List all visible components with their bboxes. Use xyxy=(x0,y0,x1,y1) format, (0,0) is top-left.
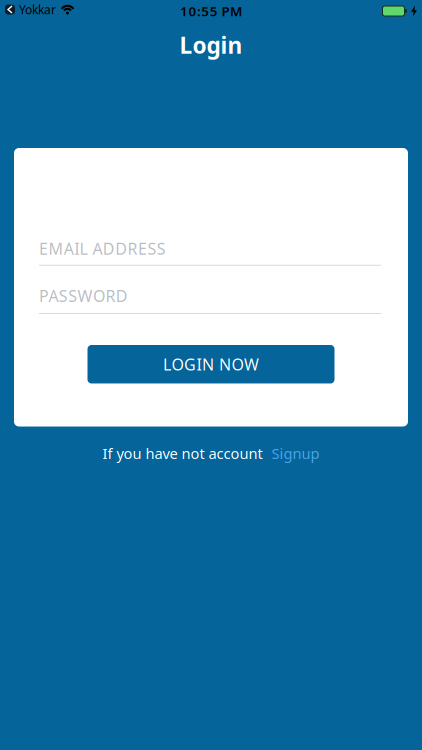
staticText: EMAIL ADDRESS xyxy=(39,238,166,259)
staticText: LOGIN NOW xyxy=(163,354,259,375)
staticText: Yokkar xyxy=(19,1,56,17)
staticText: Login xyxy=(179,30,242,60)
staticText: If you have not account xyxy=(102,443,262,463)
button[interactable]: Yokkar xyxy=(5,3,74,19)
staticText: Signup xyxy=(271,443,319,463)
button[interactable]: LOGIN NOW xyxy=(87,345,334,383)
staticText: PASSWORD xyxy=(39,285,128,306)
staticText: 10:55 PM xyxy=(180,2,242,20)
button[interactable]: Signup xyxy=(271,443,319,463)
